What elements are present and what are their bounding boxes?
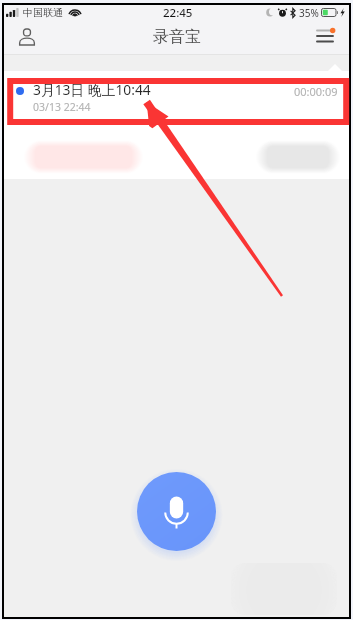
staticText: 录音宝 bbox=[153, 27, 201, 47]
staticText: 中国联通 bbox=[23, 6, 63, 19]
staticText: 35% bbox=[299, 6, 319, 20]
button[interactable]: 3月13日 晚上10:44 bbox=[4, 71, 349, 124]
staticText: 00:00:09 bbox=[294, 84, 338, 99]
button[interactable]: Menu bbox=[308, 19, 342, 53]
staticText: 03/13 22:44 bbox=[33, 100, 91, 114]
button[interactable]: Record bbox=[137, 472, 216, 551]
staticText: 22:45 bbox=[163, 5, 193, 20]
staticText: 3月13日 晚上10:44 bbox=[33, 80, 151, 99]
button[interactable]: Profile bbox=[10, 20, 44, 54]
